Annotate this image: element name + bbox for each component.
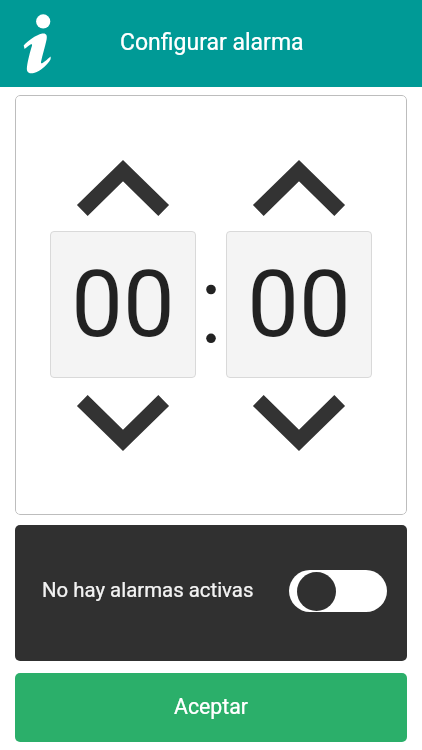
button[interactable]: Activate alarm: [289, 570, 387, 612]
button[interactable]: Decrease minutes: [253, 396, 345, 452]
staticText: 00: [71, 251, 175, 359]
button[interactable]: Decrease hours: [77, 396, 169, 452]
button[interactable]: Increase minutes: [253, 159, 345, 215]
staticText: No hay alarmas activas: [42, 578, 254, 602]
staticText: 00: [247, 251, 351, 359]
button[interactable]: hours: [50, 231, 196, 378]
staticText: Configurar alarma: [120, 29, 304, 56]
button[interactable]: Information: [18, 8, 58, 80]
button[interactable]: Increase hours: [77, 159, 169, 215]
button[interactable]: Aceptar: [15, 673, 407, 742]
staticText: Aceptar: [174, 694, 249, 719]
button[interactable]: minutes: [226, 231, 372, 378]
